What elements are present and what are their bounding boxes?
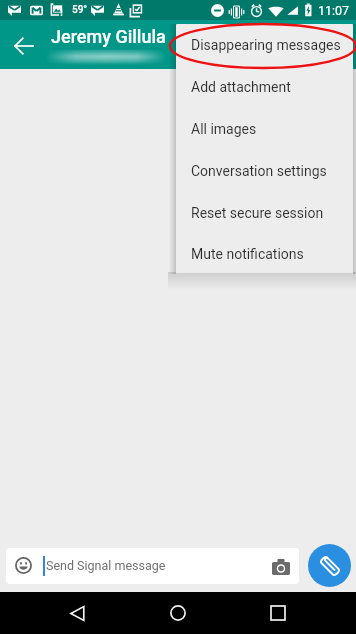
button[interactable]: Add attachment [176,66,353,108]
button[interactable]: Send Signal message [6,548,299,584]
button[interactable]: Navigate up [9,31,38,60]
button[interactable]: Recent apps [258,593,298,633]
button[interactable]: All images [176,108,353,150]
button[interactable]: Conversation settings [176,150,353,192]
button[interactable]: Disappearing messages [176,24,353,66]
staticText: All images [191,121,257,137]
staticText: Disappearing messages [191,37,341,53]
staticText: Mute notifications [191,246,304,262]
staticText: 11:07 [318,3,350,18]
staticText: Add attachment [191,79,291,95]
staticText: Reset secure session [191,205,324,221]
staticText: Conversation settings [191,163,327,179]
staticText: Jeremy Gillula [51,26,166,47]
button[interactable]: Back [57,593,97,633]
button[interactable]: Home [158,593,198,633]
staticText: 59° [72,4,88,16]
staticText: Send Signal message [46,558,166,573]
button[interactable]: Attach [308,544,351,587]
button[interactable]: Mute notifications [176,234,353,273]
button[interactable]: Reset secure session [176,192,353,234]
